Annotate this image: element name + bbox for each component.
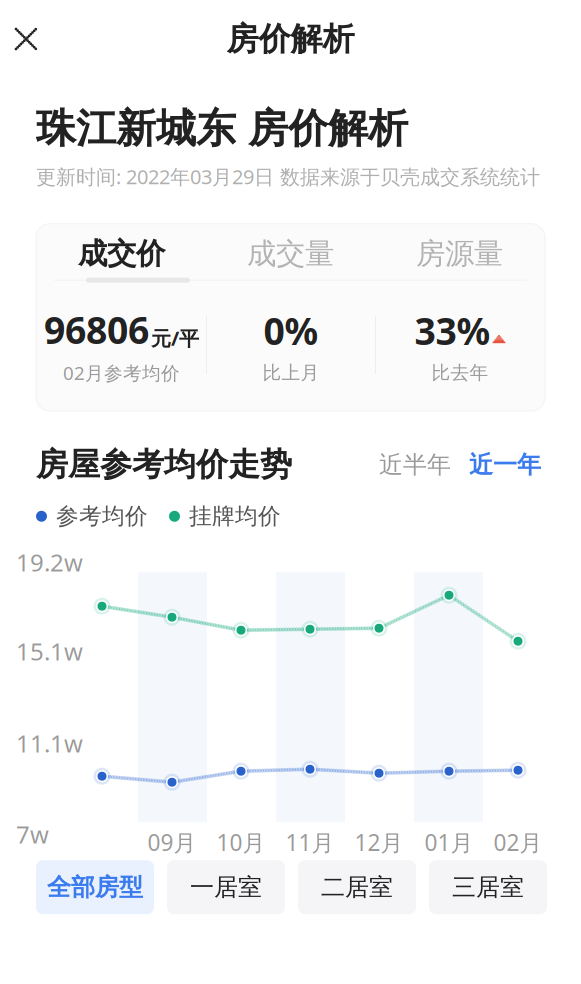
staticText: 19.2w <box>16 546 83 578</box>
staticText: 珠江新城东 房价解析 <box>36 104 408 153</box>
staticText: 96806 <box>44 305 149 354</box>
staticText: 12月 <box>354 827 403 857</box>
staticText: 近半年 <box>379 450 451 479</box>
staticText: 元/平 <box>151 325 199 351</box>
staticText: 比上月 <box>262 361 319 384</box>
staticText: 11月 <box>285 827 334 857</box>
staticText: 比去年 <box>431 361 488 384</box>
button[interactable]: 成交量 <box>206 230 375 278</box>
staticText: 10月 <box>216 827 265 857</box>
button[interactable]: 成交价 <box>37 230 206 278</box>
staticText: 参考均价 <box>56 502 148 530</box>
staticText: 7w <box>16 818 49 850</box>
staticText: 三居室 <box>452 872 524 902</box>
staticText: 成交量 <box>247 236 334 272</box>
button[interactable]: 关闭 <box>0 13 52 65</box>
button[interactable]: 近半年 <box>375 450 455 479</box>
staticText: 09月 <box>147 827 196 857</box>
button[interactable]: 一居室 <box>167 860 285 914</box>
button[interactable]: 二居室 <box>298 860 416 914</box>
staticText: 15.1w <box>16 635 83 667</box>
staticText: 01月 <box>424 827 473 857</box>
button[interactable]: 三居室 <box>429 860 547 914</box>
staticText: 全部房型 <box>47 872 143 902</box>
staticText: 11.1w <box>16 727 83 759</box>
staticText: 更新时间: 2022年03月29日 数据来源于贝壳成交系统统计 <box>36 163 540 190</box>
button[interactable]: 近一年 <box>455 450 545 479</box>
staticText: 房屋参考均价走势 <box>36 445 292 484</box>
staticText: 02月 <box>493 827 542 857</box>
staticText: 成交价 <box>78 236 165 272</box>
staticText: 一居室 <box>190 872 262 902</box>
staticText: 房源量 <box>416 236 503 272</box>
staticText: 二居室 <box>321 872 393 902</box>
staticText: 33% <box>414 306 490 355</box>
staticText: 02月参考均价 <box>63 360 180 385</box>
staticText: 0% <box>263 306 318 355</box>
button[interactable]: 全部房型 <box>36 860 154 914</box>
button[interactable]: 房源量 <box>375 230 544 278</box>
staticText: 挂牌均价 <box>189 502 281 530</box>
staticText: 房价解析 <box>226 19 354 59</box>
staticText: 近一年 <box>469 450 541 479</box>
